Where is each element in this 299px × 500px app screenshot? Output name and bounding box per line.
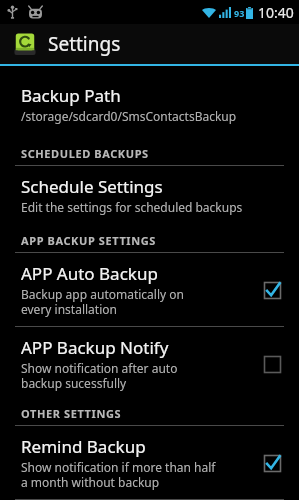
staticText: Show notification after auto backup suce…	[21, 360, 178, 391]
staticText: APP BACKUP SETTINGS	[21, 233, 156, 248]
staticText: /storage/sdcard0/SmsContactsBackup	[21, 108, 237, 124]
staticText: Schedule Settings	[21, 175, 163, 198]
button[interactable]: APP Backup Notify	[0, 327, 299, 400]
button[interactable]: Enabled	[257, 275, 287, 305]
button[interactable]: Schedule Settings	[0, 166, 299, 224]
button[interactable]: Disabled	[257, 349, 287, 379]
staticText: Remind Backup	[21, 435, 146, 458]
staticText: Show notification if more than half a mo…	[21, 459, 216, 490]
button[interactable]: Backup Path	[0, 75, 299, 133]
staticText: Backup app automatically on every instal…	[21, 286, 184, 317]
staticText: APP Auto Backup	[21, 262, 158, 285]
button[interactable]: Settings	[0, 24, 299, 64]
staticText: 10:40	[258, 3, 294, 22]
staticText: SCHEDULED BACKUPS	[21, 146, 149, 161]
button[interactable]: Enabled	[257, 448, 287, 478]
staticText: 93	[234, 7, 245, 19]
staticText: Backup Path	[21, 84, 121, 107]
staticText: Settings	[48, 31, 121, 57]
button[interactable]: Remind Backup	[0, 426, 299, 499]
button[interactable]: APP Auto Backup	[0, 253, 299, 326]
staticText: Edit the settings for scheduled backups	[21, 199, 243, 215]
staticText: APP Backup Notify	[21, 336, 169, 359]
staticText: OTHER SETTINGS	[21, 406, 122, 421]
